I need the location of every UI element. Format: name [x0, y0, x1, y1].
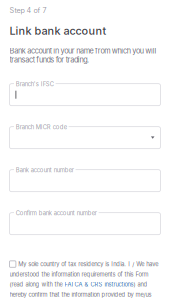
staticText: My sole country of tax residency is Indi… [18, 261, 158, 268]
staticText: hereby confirm that the information prov… [9, 291, 151, 298]
button[interactable]: Branch MICR code [9, 123, 160, 149]
staticText: Branch MICR code [16, 124, 67, 131]
staticText: Bank account in your name from which you… [9, 46, 156, 64]
staticText: ) and [133, 281, 147, 288]
button[interactable]: Tax residency declaration [9, 261, 160, 298]
staticText: Link bank account [9, 24, 106, 37]
button[interactable]: Confirm bank account number [9, 209, 160, 235]
staticText: (read along with the [9, 281, 64, 288]
button[interactable]: Bank account number [9, 166, 160, 192]
staticText: Confirm bank account number [16, 210, 97, 217]
staticText: Branch's IFSC [16, 81, 54, 88]
staticText: understood the information requirements … [9, 271, 148, 278]
staticText: Step 4 of 7 [9, 6, 46, 15]
button[interactable]: Branch's IFSC [9, 80, 160, 106]
staticText: FATCA & CRS instructions [64, 281, 133, 288]
staticText: Bank account number [16, 167, 74, 174]
